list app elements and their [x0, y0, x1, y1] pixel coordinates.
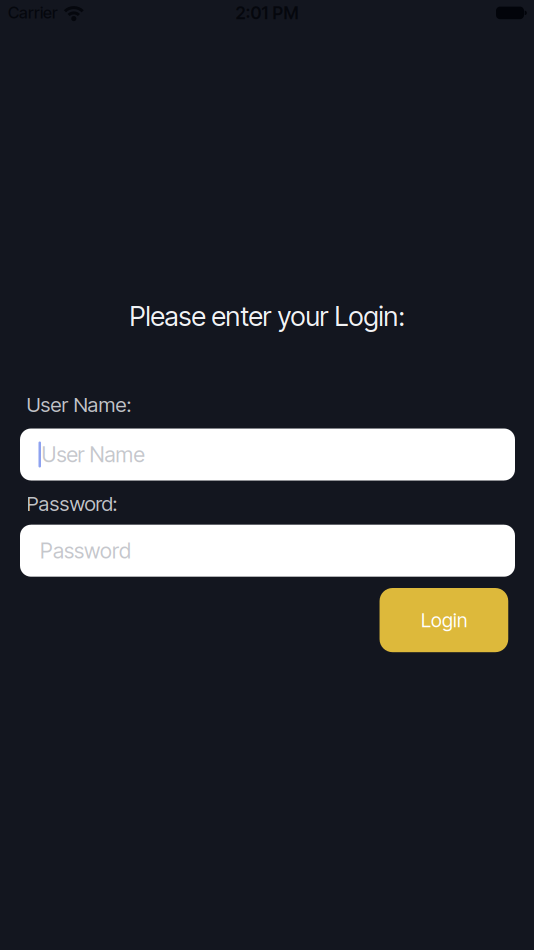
staticText: Password: [40, 538, 131, 564]
staticText: Login: [421, 608, 467, 632]
staticText: 2:01 PM: [235, 2, 298, 23]
staticText: Please enter your Login:: [129, 300, 404, 333]
button[interactable]: User Name: [20, 428, 515, 480]
staticText: User Name: [41, 442, 144, 467]
button[interactable]: Login: [379, 588, 508, 652]
button[interactable]: Password: [20, 525, 515, 577]
staticText: Password:: [26, 491, 117, 516]
staticText: Carrier: [8, 3, 58, 23]
staticText: User Name:: [26, 392, 131, 417]
